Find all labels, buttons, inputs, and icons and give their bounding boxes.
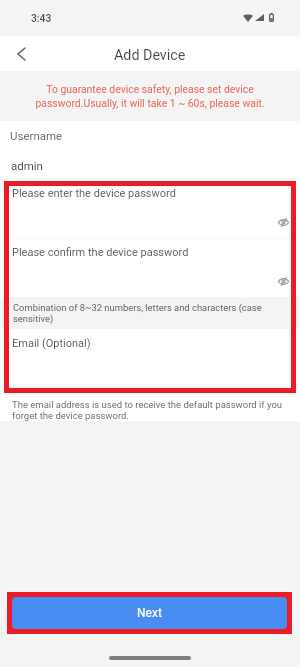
staticText: Email (Optional) — [12, 337, 91, 350]
button[interactable]: Email (Optional) — [0, 329, 300, 394]
button[interactable]: Next — [12, 597, 287, 629]
staticText: Username — [10, 129, 63, 142]
button[interactable]: Please enter the device password — [0, 182, 300, 238]
staticText: admin — [11, 159, 43, 172]
staticText: Please confirm the device password — [12, 246, 189, 259]
staticText: The email address is used to receive the… — [12, 399, 288, 421]
staticText: To guarantee device safety, please set d… — [16, 83, 284, 110]
staticText: Add Device — [114, 47, 186, 64]
staticText: 3:43 — [31, 12, 52, 24]
staticText: Please enter the device password — [12, 187, 176, 200]
button[interactable]: Please confirm the device password — [0, 239, 300, 297]
button[interactable]: Show password — [275, 214, 291, 230]
button[interactable]: Back — [6, 39, 36, 69]
staticText: Combination of 8~32 numbers, letters and… — [13, 302, 284, 324]
staticText: Next — [137, 606, 162, 620]
button[interactable]: Show password — [275, 273, 291, 289]
